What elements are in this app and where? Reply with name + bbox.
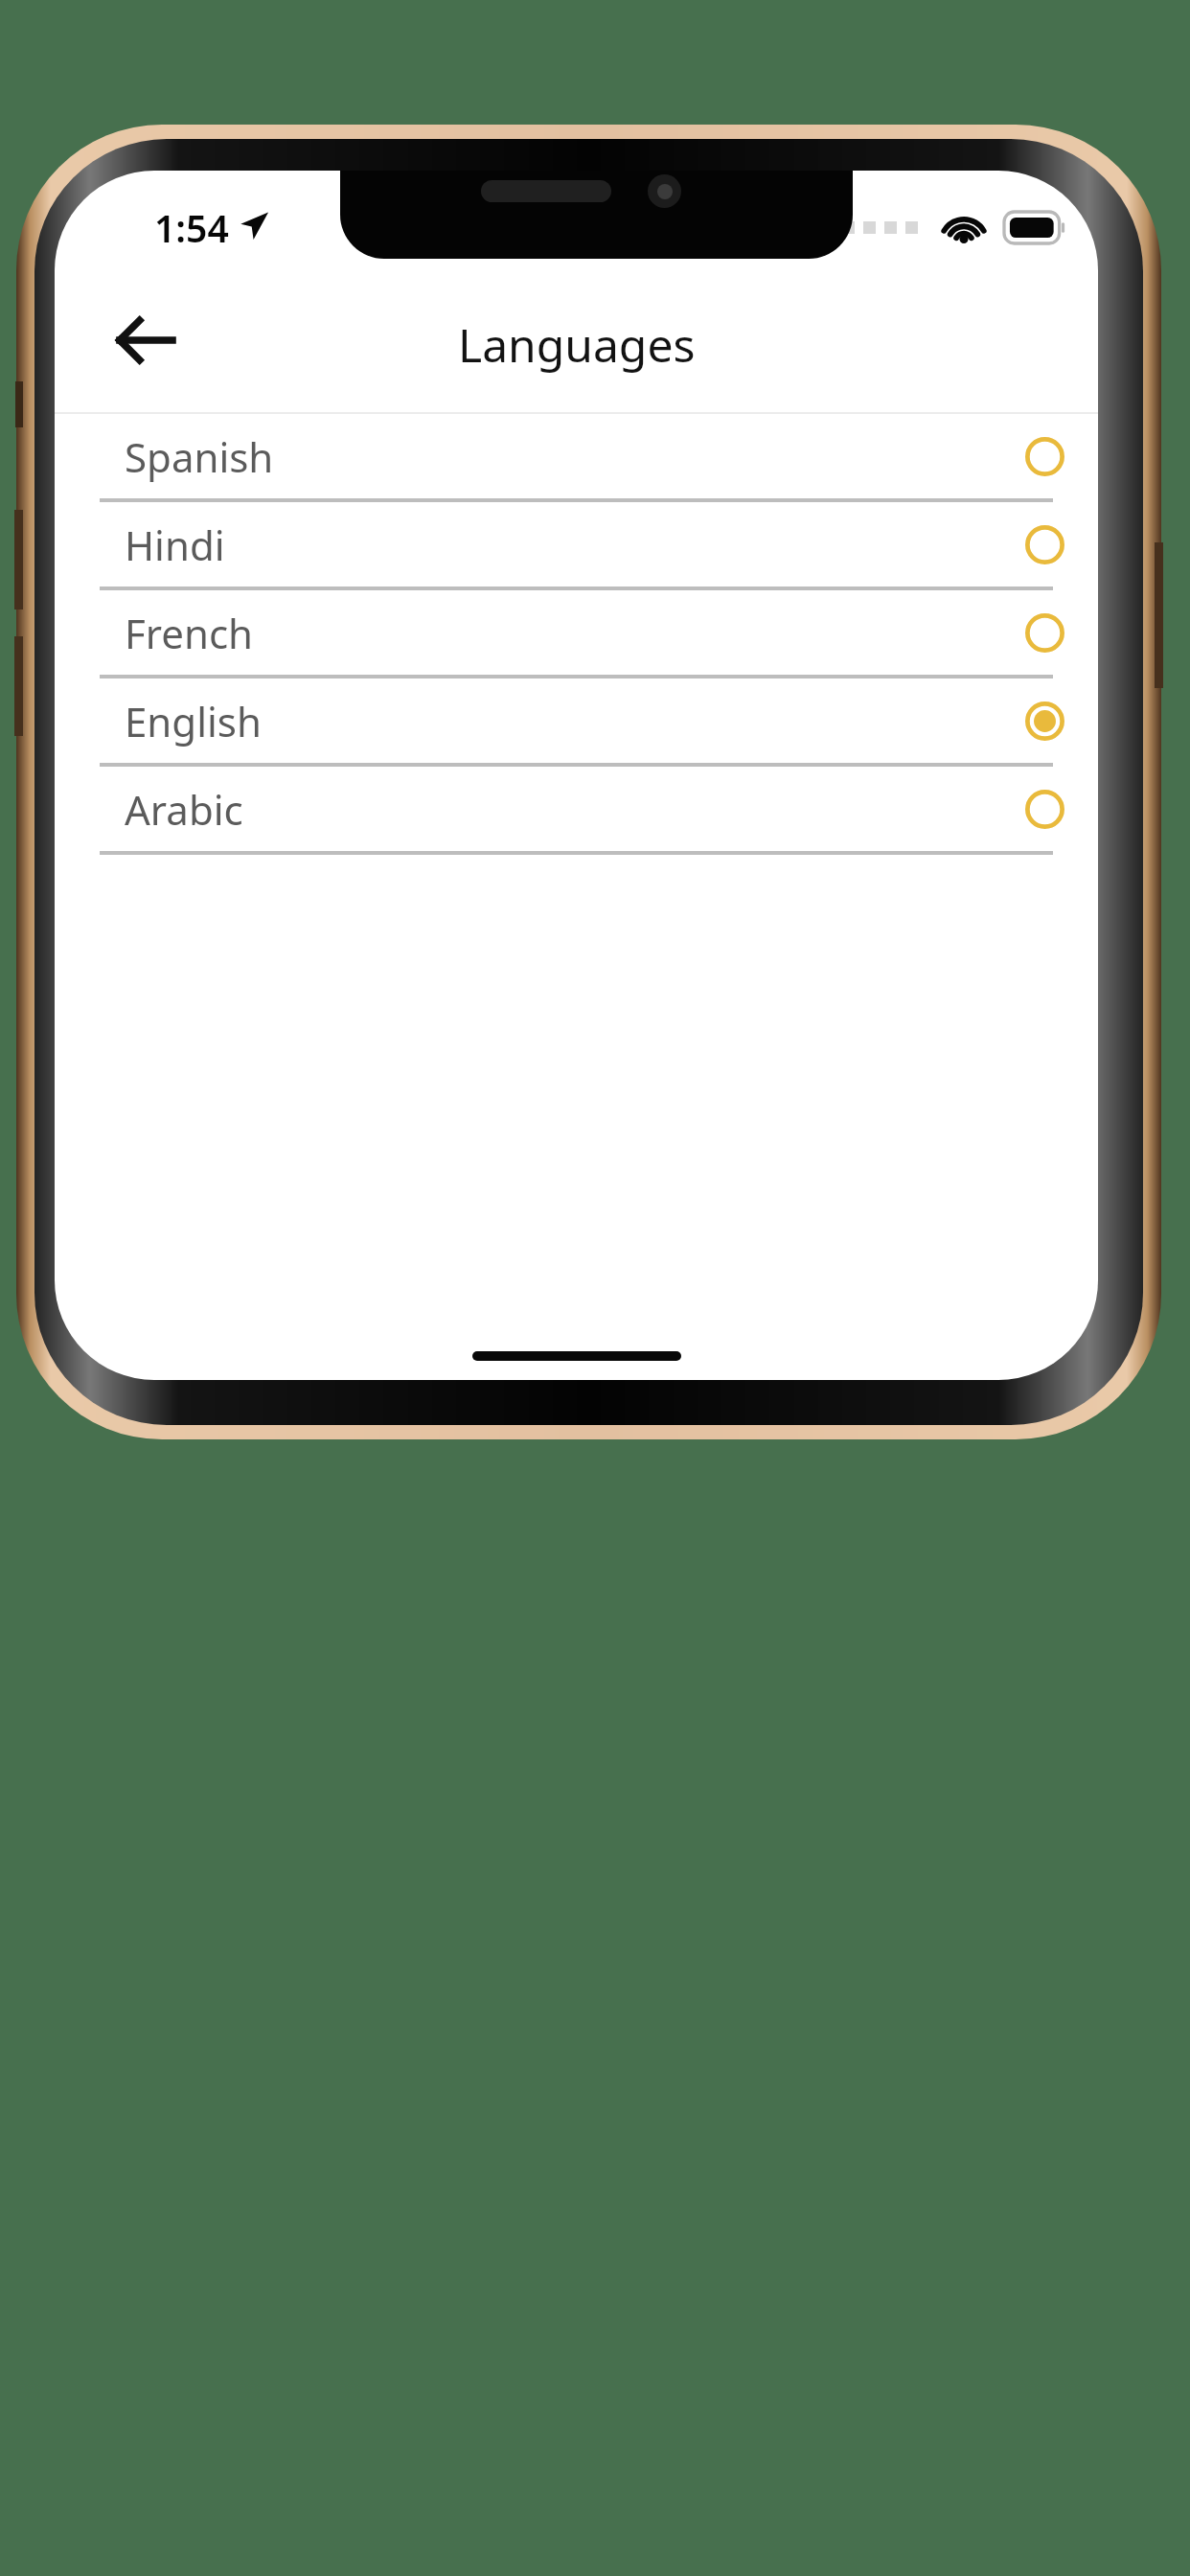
staticText: Spanish xyxy=(125,429,1023,484)
staticText: Arabic xyxy=(125,782,1023,837)
staticText: English xyxy=(125,694,1023,748)
button[interactable]: French xyxy=(55,590,1098,678)
button[interactable]: Hindi xyxy=(55,502,1098,590)
button[interactable]: Back xyxy=(95,293,196,387)
button[interactable]: English xyxy=(55,678,1098,767)
button[interactable]: Spanish xyxy=(55,414,1098,502)
staticText: Hindi xyxy=(125,517,1023,572)
button[interactable]: Arabic xyxy=(55,767,1098,855)
staticText: 1:54 xyxy=(154,202,229,253)
staticText: French xyxy=(125,606,1023,660)
staticText: Languages xyxy=(458,313,696,376)
